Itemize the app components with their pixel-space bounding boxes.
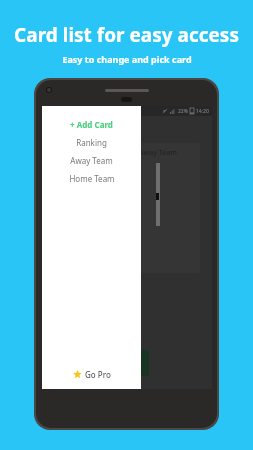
staticText: + Add Card — [70, 119, 113, 130]
staticText: 14:20 — [196, 108, 209, 115]
button[interactable]: Ranking — [42, 133, 141, 151]
staticText: Go Pro — [85, 369, 111, 380]
button[interactable]: Home Team — [42, 169, 141, 187]
staticText: Easy to change and pick card — [62, 53, 192, 65]
staticText: Ranking — [76, 137, 107, 148]
staticText: 22% — [178, 108, 188, 115]
staticText: Home Team — [69, 173, 115, 184]
button[interactable]: Rank — [54, 126, 128, 289]
button[interactable]: + Add Card — [42, 115, 141, 133]
other: Go Pro star — [73, 370, 82, 379]
staticText: Away Team — [70, 155, 113, 166]
staticText: Card list for easy access — [14, 22, 239, 48]
button[interactable]: Away Team — [42, 151, 141, 169]
staticText: Away Team — [139, 148, 177, 158]
button[interactable] — [54, 350, 149, 376]
button[interactable]: Go Pro star — [42, 361, 141, 387]
button[interactable]: Away Team — [134, 143, 200, 273]
